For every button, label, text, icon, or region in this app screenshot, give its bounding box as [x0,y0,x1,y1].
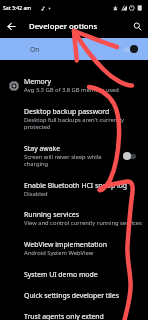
staticText: Running services [24,210,79,219]
button[interactable]: Quick settings developer tiles [0,285,148,306]
button[interactable]: Back [0,16,22,36]
staticText: Avg 3.3 GB of 3.8 GB memory used [24,86,119,94]
button[interactable]: Search [126,16,148,36]
button[interactable]: Enable Bluetooth HCI snoop log [0,175,148,204]
button[interactable]: Trust agents only extend [0,306,148,320]
staticText: Desktop backup password [24,107,110,116]
staticText: Desktop full backups aren't currently pr… [24,116,142,131]
button[interactable]: WebView implementation [0,233,148,263]
staticText: Disabled [24,190,48,198]
button[interactable]: Stay awake [0,137,148,175]
staticText: Trust agents only extend [24,312,104,320]
button[interactable]: Running services [0,204,148,233]
staticText: System UI demo mode [24,270,98,279]
staticText: Enable Bluetooth HCI snoop log [24,181,128,190]
button[interactable]: On [0,38,148,60]
staticText: View and control currently running servi… [24,219,142,227]
staticText: Quick settings developer tiles [24,291,120,300]
staticText: Screen will never sleep while charging [24,153,119,168]
button[interactable]: Desktop backup password [0,100,148,137]
staticText: Memory [24,77,52,86]
staticText: WebView implementation [24,240,108,249]
staticText: Developer options [29,21,98,32]
staticText: Stay awake [24,144,61,153]
staticText: Android System WebView [24,249,94,257]
staticText: Sat 3:42 am [3,5,32,12]
staticText: On [30,45,40,54]
button[interactable]: Memory [0,71,148,100]
button[interactable]: System UI demo mode [0,263,148,285]
